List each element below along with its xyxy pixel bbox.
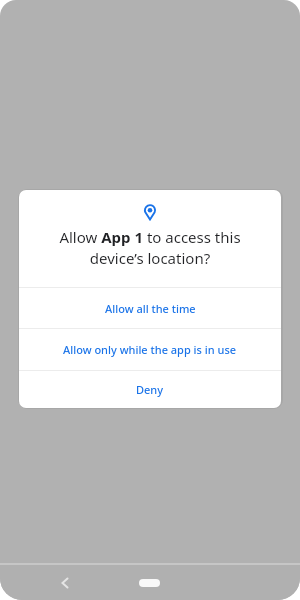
button[interactable] xyxy=(52,570,78,596)
button[interactable] xyxy=(139,579,160,587)
button[interactable]: Deny xyxy=(19,371,281,408)
button[interactable]: Allow only while the app is in use xyxy=(19,329,281,370)
button[interactable]: Allow all the time xyxy=(19,288,281,328)
staticText: Allow App 1 to access this device’s loca… xyxy=(19,227,281,269)
staticText: Allow all the time xyxy=(105,301,196,316)
staticText: Allow only while the app is in use xyxy=(63,342,237,357)
staticText: Deny xyxy=(136,382,164,397)
